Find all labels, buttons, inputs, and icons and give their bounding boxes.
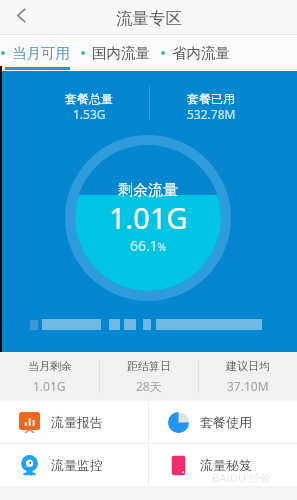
button[interactable]: 流量报告: [0, 401, 148, 443]
staticText: 套餐总量: [65, 91, 113, 106]
button[interactable]: 流量秘笈: [149, 444, 297, 486]
button[interactable]: 当月剩余: [0, 352, 99, 401]
staticText: 省内流量: [172, 44, 230, 62]
staticText: 当月可用: [12, 44, 70, 62]
staticText: 37.10M: [227, 378, 269, 394]
button[interactable]: 当月可用: [1, 44, 70, 62]
staticText: 流量报告: [51, 414, 103, 430]
button[interactable]: 套餐使用: [149, 401, 297, 443]
button[interactable]: 流量监控: [0, 444, 148, 486]
staticText: 建议日均: [226, 359, 270, 373]
staticText: 距结算日: [127, 359, 171, 373]
button[interactable]: 距结算日: [100, 352, 198, 401]
button[interactable]: 省内流量: [161, 44, 230, 62]
staticText: 66.1%: [130, 236, 167, 255]
staticText: 套餐已用: [187, 91, 235, 106]
staticText: 当月剩余: [28, 359, 72, 373]
staticText: 1.01G: [33, 378, 66, 394]
button[interactable]: 建议日均: [199, 352, 297, 401]
staticText: 流量监控: [51, 457, 103, 473]
staticText: 28天: [136, 378, 162, 394]
staticText: 1.01G: [109, 198, 188, 237]
staticText: 1.53G: [73, 106, 106, 122]
staticText: 532.78M: [187, 106, 236, 122]
staticText: 国内流量: [92, 44, 150, 62]
button[interactable]: 国内流量: [81, 44, 150, 62]
staticText: 剩余流量: [118, 181, 178, 200]
staticText: 套餐使用: [200, 414, 252, 430]
staticText: 流量秘笈: [200, 457, 252, 473]
button[interactable]: Back: [0, 0, 42, 34]
staticText: BAIDU 经验: [212, 470, 271, 485]
staticText: 流量专区: [116, 8, 182, 29]
